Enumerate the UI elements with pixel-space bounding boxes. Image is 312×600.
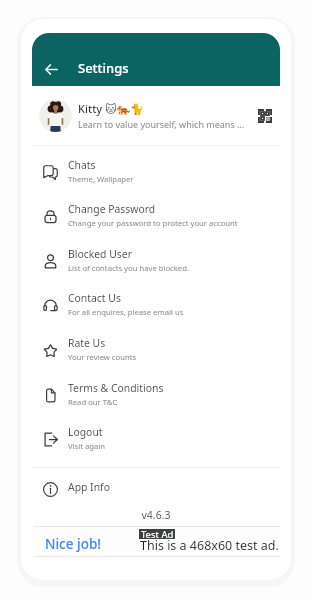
staticText: List of contacts you have blocked. — [68, 263, 189, 273]
button[interactable]: Rate Us — [32, 328, 280, 372]
staticText: Kitty 🐱🐅🐈 — [78, 101, 144, 116]
button[interactable]: Blocked User — [32, 239, 280, 283]
staticText: This is a 468x60 test ad. — [140, 537, 279, 554]
button[interactable]: Nice job! — [34, 526, 280, 557]
staticText: Change Password — [68, 202, 156, 216]
staticText: Terms & Conditions — [68, 381, 164, 395]
staticText: Chats — [68, 158, 96, 172]
button[interactable]: App Info — [32, 472, 280, 516]
button[interactable]: Scan QR code — [253, 104, 277, 128]
staticText: Learn to value yourself, which means … — [78, 118, 246, 130]
staticText: Rate Us — [68, 336, 106, 350]
staticText: Logout — [68, 425, 103, 439]
staticText: For all enquires, please email us — [68, 307, 184, 317]
staticText: Contact Us — [68, 291, 121, 305]
button[interactable]: Change Password — [32, 194, 280, 238]
button[interactable]: Chats — [32, 150, 280, 194]
staticText: Nice job! — [45, 535, 101, 553]
staticText: Read our T&C — [68, 397, 118, 407]
staticText: Blocked User — [68, 247, 132, 261]
staticText: Test Ad — [141, 528, 174, 538]
staticText: App Info — [68, 480, 110, 494]
staticText: v4.6.3 — [21, 508, 291, 522]
button[interactable]: Kitty 🐱🐅🐈 — [32, 95, 280, 137]
staticText: Your review counts — [68, 352, 137, 362]
staticText: Settings — [78, 59, 129, 77]
staticText: Theme, Wallpaper — [68, 174, 134, 184]
staticText: Change your password to protect your acc… — [68, 218, 238, 228]
button[interactable]: Back — [39, 57, 63, 81]
button[interactable]: Contact Us — [32, 283, 280, 327]
button[interactable]: Logout — [32, 417, 280, 461]
button[interactable]: Terms & Conditions — [32, 373, 280, 417]
staticText: Visit again — [68, 441, 106, 451]
